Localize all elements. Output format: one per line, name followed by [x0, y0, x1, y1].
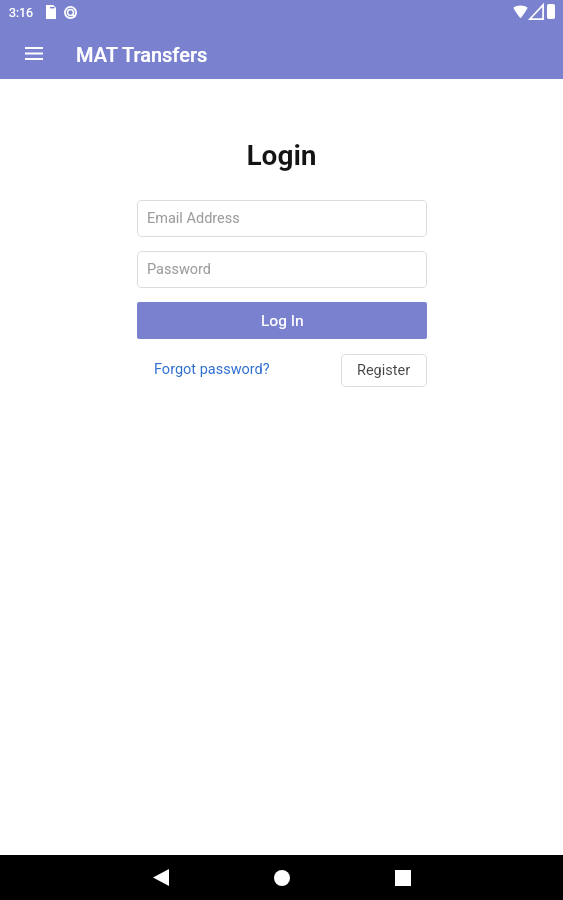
- staticText: MAT Transfers: [76, 43, 208, 66]
- button[interactable]: Password: [137, 251, 427, 288]
- button[interactable]: Email Address: [137, 200, 427, 237]
- staticText: Password: [147, 261, 212, 278]
- staticText: 3:16: [9, 5, 34, 20]
- button[interactable]: Forgot password?: [137, 354, 287, 387]
- button[interactable]: Home: [263, 859, 300, 896]
- button[interactable]: Back: [142, 859, 179, 896]
- staticText: Login: [0, 139, 563, 172]
- staticText: Register: [357, 362, 411, 379]
- staticText: Email Address: [147, 210, 240, 227]
- staticText: Forgot password?: [154, 361, 270, 378]
- staticText: Log In: [261, 312, 304, 330]
- button[interactable]: Open navigation menu: [13, 32, 55, 74]
- button[interactable]: Register: [341, 354, 427, 387]
- button[interactable]: Recent apps: [384, 859, 421, 896]
- button[interactable]: Log In: [137, 302, 427, 339]
